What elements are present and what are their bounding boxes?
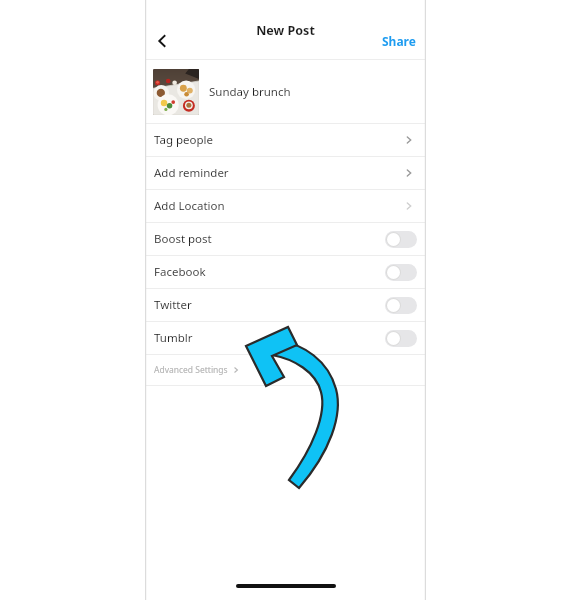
- button[interactable]: Facebook toggle: [385, 264, 417, 281]
- button[interactable]: Facebook: [145, 256, 426, 288]
- staticText: Tag people: [154, 132, 214, 148]
- button[interactable]: Advanced Settings: [145, 355, 426, 385]
- staticText: Advanced Settings: [154, 364, 228, 376]
- staticText: Add Location: [154, 198, 225, 214]
- button[interactable]: Share: [372, 27, 426, 55]
- button[interactable]: Boost post toggle: [385, 231, 417, 248]
- button[interactable]: Add Location: [145, 190, 426, 222]
- button[interactable]: Twitter: [145, 289, 426, 321]
- button[interactable]: Back: [145, 24, 179, 58]
- button[interactable]: Tumblr: [145, 322, 426, 354]
- button[interactable]: Tag people: [145, 124, 426, 156]
- staticText: Tumblr: [154, 330, 193, 346]
- staticText: Add reminder: [154, 165, 229, 181]
- button[interactable]: Sunday brunch: [145, 60, 426, 123]
- button[interactable]: Twitter toggle: [385, 297, 417, 314]
- button[interactable]: Boost post: [145, 223, 426, 255]
- staticText: Twitter: [154, 297, 192, 313]
- staticText: Share: [382, 33, 416, 49]
- button[interactable]: Tumblr toggle: [385, 330, 417, 347]
- staticText: Sunday brunch: [209, 84, 291, 100]
- staticText: Boost post: [154, 231, 212, 247]
- button[interactable]: Add reminder: [145, 157, 426, 189]
- staticText: Facebook: [154, 264, 206, 280]
- staticText: New Post: [256, 22, 315, 39]
